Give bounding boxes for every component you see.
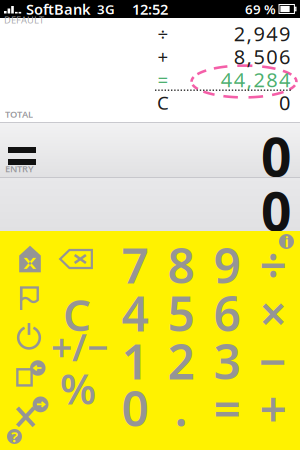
staticText: ENTRY: [5, 162, 34, 175]
staticText: 8: [266, 66, 277, 93]
staticText: ,: [247, 20, 252, 47]
staticText: 3: [213, 329, 240, 393]
staticText: 7: [121, 233, 148, 297]
staticText: 8: [234, 43, 245, 70]
staticText: 5: [167, 281, 194, 345]
button[interactable]: 3: [204, 329, 250, 367]
staticText: 2: [234, 20, 245, 47]
staticText: %: [60, 361, 96, 416]
staticText: ×: [259, 281, 286, 345]
button[interactable]: 0: [112, 376, 158, 414]
button[interactable]: 8: [158, 233, 204, 271]
staticText: =: [157, 67, 168, 92]
button[interactable]: Clear tag: [0, 244, 54, 274]
staticText: 4: [279, 66, 290, 93]
staticText: 5: [253, 43, 264, 70]
staticText: +: [259, 376, 286, 440]
staticText: 0: [261, 121, 292, 191]
staticText: 4: [221, 66, 232, 93]
button[interactable]: Info: [279, 234, 294, 249]
staticText: 2: [253, 66, 264, 93]
button[interactable]: Flag: [0, 285, 54, 311]
staticText: ,: [247, 43, 252, 70]
staticText: ÷: [259, 233, 286, 297]
staticText: C: [63, 285, 91, 343]
staticText: 9: [279, 20, 290, 47]
staticText: i: [284, 232, 288, 251]
staticText: 0: [266, 43, 277, 70]
staticText: 4: [266, 20, 277, 47]
staticText: ÷: [157, 21, 168, 46]
staticText: 12:52: [132, 0, 168, 19]
button[interactable]: 9: [204, 233, 250, 271]
staticText: =: [213, 376, 240, 440]
staticText: C: [157, 90, 169, 115]
button[interactable]: 2: [158, 329, 204, 367]
staticText: DEFAULT: [4, 14, 44, 26]
staticText: 0: [121, 376, 148, 440]
staticText: TOTAL: [5, 108, 33, 120]
staticText: 6: [213, 281, 240, 345]
staticText: .: [174, 376, 187, 440]
button[interactable]: Memory store: [0, 398, 54, 427]
staticText: +/−: [51, 322, 109, 372]
staticText: 1: [121, 329, 148, 393]
button[interactable]: 6: [204, 281, 250, 319]
button[interactable]: =: [204, 376, 250, 414]
staticText: 2: [167, 329, 194, 393]
button[interactable]: 7: [112, 233, 158, 271]
staticText: 69 %: [245, 0, 276, 18]
button[interactable]: Memory recall: [0, 361, 54, 388]
staticText: 0: [261, 175, 292, 246]
button[interactable]: 1: [112, 329, 158, 367]
staticText: 4: [121, 281, 148, 345]
staticText: 9: [253, 20, 264, 47]
button[interactable]: .: [158, 376, 204, 414]
button[interactable]: Power: [0, 322, 54, 350]
button[interactable]: C: [54, 285, 108, 311]
button[interactable]: 5: [158, 281, 204, 319]
button[interactable]: %: [54, 361, 108, 388]
staticText: 3G: [91, 0, 115, 18]
staticText: −: [259, 329, 287, 393]
button[interactable]: ×: [250, 281, 296, 319]
button[interactable]: Delete: [54, 244, 108, 274]
button[interactable]: −: [250, 329, 296, 367]
button[interactable]: 4: [112, 281, 158, 319]
staticText: ?: [11, 427, 18, 446]
staticText: 8: [167, 233, 194, 297]
staticText: 6: [279, 43, 290, 70]
button[interactable]: +/−: [54, 322, 108, 350]
button[interactable]: Help: [7, 429, 22, 444]
staticText: +: [157, 44, 168, 69]
staticText: 0: [279, 89, 290, 116]
staticText: SoftBank: [22, 0, 91, 19]
button[interactable]: +: [250, 376, 296, 414]
button[interactable]: ÷: [250, 233, 296, 271]
staticText: ,: [247, 66, 252, 93]
staticText: 9: [213, 233, 240, 297]
staticText: 4: [234, 66, 245, 93]
